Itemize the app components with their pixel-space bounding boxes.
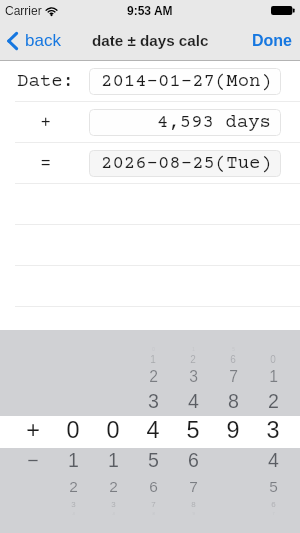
button[interactable]: 7	[133, 489, 173, 519]
staticText: Done	[252, 32, 292, 50]
staticText: +	[26, 417, 40, 443]
staticText: 2	[69, 478, 78, 495]
staticText: 3	[71, 500, 76, 509]
button[interactable]: 3	[253, 415, 293, 445]
button[interactable]: +	[13, 415, 53, 445]
button[interactable]: 4	[253, 445, 293, 475]
staticText: 1	[269, 368, 278, 386]
other: Wi-Fi signal	[45, 6, 58, 16]
staticText: 5	[186, 417, 200, 443]
button[interactable]: 5	[173, 415, 213, 445]
button[interactable]: Done	[242, 26, 300, 56]
button[interactable]: 2014-01-27(Mon)	[89, 68, 281, 95]
button[interactable]: 2	[253, 386, 293, 416]
button[interactable]: 1	[53, 445, 93, 475]
staticText: 5	[269, 478, 278, 495]
staticText: 2	[268, 390, 279, 412]
staticText: 4	[188, 390, 199, 412]
button[interactable]: 2	[133, 362, 173, 392]
button[interactable]: 9	[213, 415, 253, 445]
staticText: Carrier	[5, 4, 42, 17]
button[interactable]: 5	[213, 334, 253, 364]
staticText: 5	[148, 449, 159, 471]
button[interactable]: 3	[93, 489, 133, 519]
button[interactable]: 0	[93, 415, 133, 445]
button[interactable]: 7	[213, 362, 253, 392]
staticText: 6	[271, 500, 276, 509]
staticText: 1	[68, 449, 79, 471]
button[interactable]: 2	[53, 471, 93, 501]
button[interactable]: 2026-08-25(Tue)	[89, 150, 281, 177]
staticText: 8	[228, 390, 239, 412]
button[interactable]: 6	[173, 445, 213, 475]
staticText: date ± days calc	[92, 32, 209, 49]
button[interactable]: −	[13, 445, 53, 475]
staticText: 0	[66, 417, 80, 443]
staticText: 0	[270, 354, 276, 365]
staticText: 8	[191, 500, 196, 509]
staticText: back	[25, 31, 61, 50]
staticText: 6	[188, 449, 199, 471]
staticText: 3	[148, 390, 159, 412]
staticText: 1	[150, 354, 156, 365]
staticText: Date:	[17, 71, 74, 92]
button[interactable]: 6	[133, 471, 173, 501]
button[interactable]: 1	[133, 344, 173, 374]
button[interactable]: 5	[133, 445, 173, 475]
button[interactable]: 1	[173, 334, 213, 364]
button[interactable]: 4,593 days	[89, 109, 281, 136]
staticText: 6	[149, 478, 158, 495]
staticText: 9	[226, 417, 240, 443]
button[interactable]: 6	[253, 489, 293, 519]
staticText: 1	[108, 449, 119, 471]
staticText: 4,593 days	[157, 112, 271, 133]
button[interactable]: 5	[253, 471, 293, 501]
button[interactable]: 6	[213, 344, 253, 374]
staticText: 6	[230, 354, 236, 365]
button[interactable]: 2	[93, 471, 133, 501]
button[interactable]: 4	[173, 386, 213, 416]
button[interactable]: 3	[53, 489, 93, 519]
staticText: 3	[189, 368, 198, 386]
button[interactable]: back	[0, 26, 73, 55]
button[interactable]: 8	[173, 489, 213, 519]
button[interactable]: 0	[53, 415, 93, 445]
staticText: 7	[151, 500, 156, 509]
staticText: =	[40, 153, 52, 174]
button[interactable]: 4	[133, 415, 173, 445]
button[interactable]: 1	[253, 362, 293, 392]
staticText: 4	[146, 417, 160, 443]
staticText: 2014-01-27(Mon)	[101, 71, 272, 92]
staticText: 9:53 AM	[127, 4, 173, 17]
staticText: 2	[190, 354, 196, 365]
staticText: 7	[229, 368, 238, 386]
button[interactable]: 2	[173, 344, 213, 374]
staticText: +	[40, 112, 52, 133]
staticText: 2026-08-25(Tue)	[101, 153, 272, 174]
staticText: 7	[189, 478, 198, 495]
staticText: 3	[111, 500, 116, 509]
button[interactable]: 3	[133, 386, 173, 416]
button[interactable]: 3	[173, 362, 213, 392]
button[interactable]: 1	[93, 445, 133, 475]
button[interactable]: 0	[253, 344, 293, 374]
button[interactable]: 7	[173, 471, 213, 501]
staticText: 4	[268, 449, 279, 471]
other: Battery full	[271, 6, 295, 15]
button[interactable]: 8	[213, 386, 253, 416]
staticText: 0	[106, 417, 120, 443]
staticText: 2	[149, 368, 158, 386]
